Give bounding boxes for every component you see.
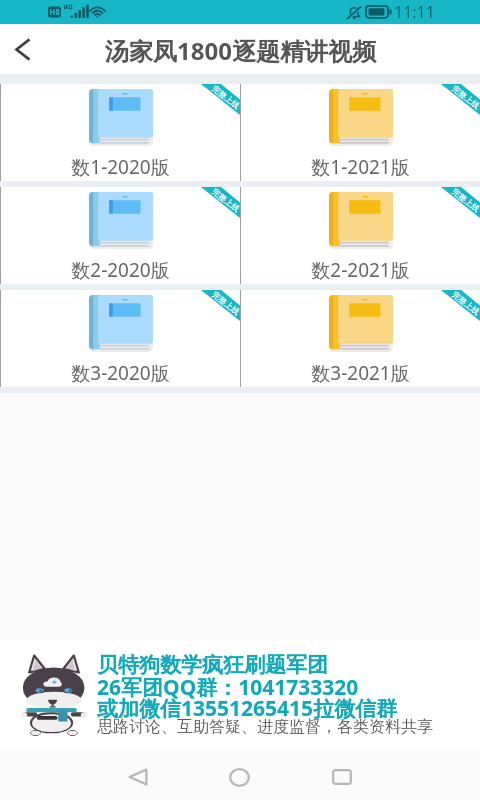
button[interactable]: 数3-2020版 bbox=[1, 290, 240, 387]
staticText: 完整上线 bbox=[450, 186, 480, 214]
staticText: 完整上线 bbox=[210, 83, 242, 111]
staticText: 完整上线 bbox=[450, 289, 480, 317]
button[interactable]: Back bbox=[109, 754, 166, 800]
staticText: 数3-2021版 bbox=[311, 360, 410, 386]
button[interactable]: 数2-2020版 bbox=[1, 187, 240, 284]
staticText: 数2-2021版 bbox=[311, 257, 410, 283]
staticText: 完整上线 bbox=[210, 289, 242, 317]
button[interactable]: 数2-2021版 bbox=[241, 187, 480, 284]
staticText: 数2-2020版 bbox=[71, 257, 170, 283]
staticText: 数3-2020版 bbox=[71, 360, 170, 386]
button[interactable]: Recent apps bbox=[313, 754, 370, 800]
staticText: 思路讨论、互助答疑、进度监督，各类资料共享 bbox=[97, 717, 433, 737]
staticText: 或加微信13551265415拉微信群 bbox=[97, 694, 398, 723]
staticText: 数1-2020版 bbox=[71, 154, 170, 180]
staticText: 汤家凤1800逐题精讲视频 bbox=[105, 34, 376, 67]
staticText: 完整上线 bbox=[450, 83, 480, 111]
button[interactable]: 数1-2020版 bbox=[1, 84, 240, 181]
staticText: 贝特狗数学疯狂刷题军团 bbox=[97, 652, 328, 678]
button[interactable]: Home bbox=[211, 754, 268, 800]
button[interactable]: 数1-2021版 bbox=[241, 84, 480, 181]
button[interactable]: Back bbox=[0, 24, 46, 74]
button[interactable]: 贝特狗数学疯狂刷题军团 bbox=[0, 640, 480, 751]
staticText: 数1-2021版 bbox=[311, 154, 410, 180]
button[interactable]: 数3-2021版 bbox=[241, 290, 480, 387]
staticText: 完整上线 bbox=[210, 186, 242, 214]
staticText: 11:11 bbox=[394, 1, 435, 23]
staticText: 26军团QQ群：1041733320 bbox=[97, 673, 359, 702]
